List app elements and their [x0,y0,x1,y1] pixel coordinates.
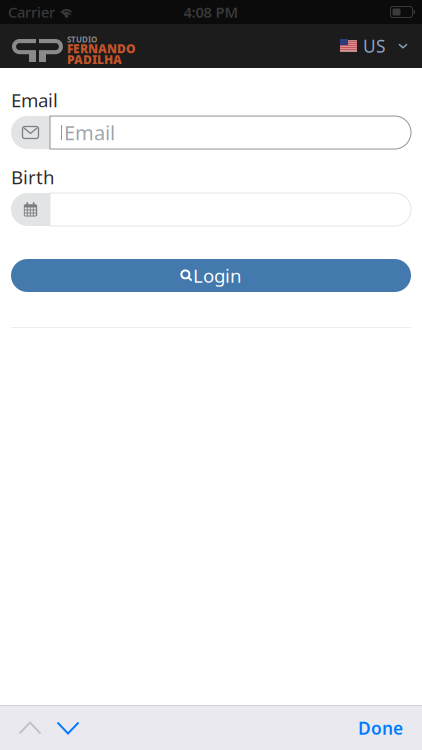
staticText: Login [193,263,242,288]
button[interactable]: Done [342,706,419,750]
button[interactable]: Previous field [11,706,49,750]
staticText: US [363,34,386,57]
staticText: STUDIO [67,34,97,45]
staticText: FERNANDO [67,40,136,56]
button[interactable]: Login [11,259,411,292]
staticText: Carrier [8,2,55,22]
staticText: Email [64,119,115,146]
staticText: 4:08 PM [183,2,238,22]
button[interactable]: US [340,31,408,61]
staticText: Birth [11,165,55,189]
staticText: Email [11,88,58,112]
staticText: PADILHA [67,51,122,67]
button[interactable]: Next field [49,706,87,750]
staticText: Done [358,716,403,739]
